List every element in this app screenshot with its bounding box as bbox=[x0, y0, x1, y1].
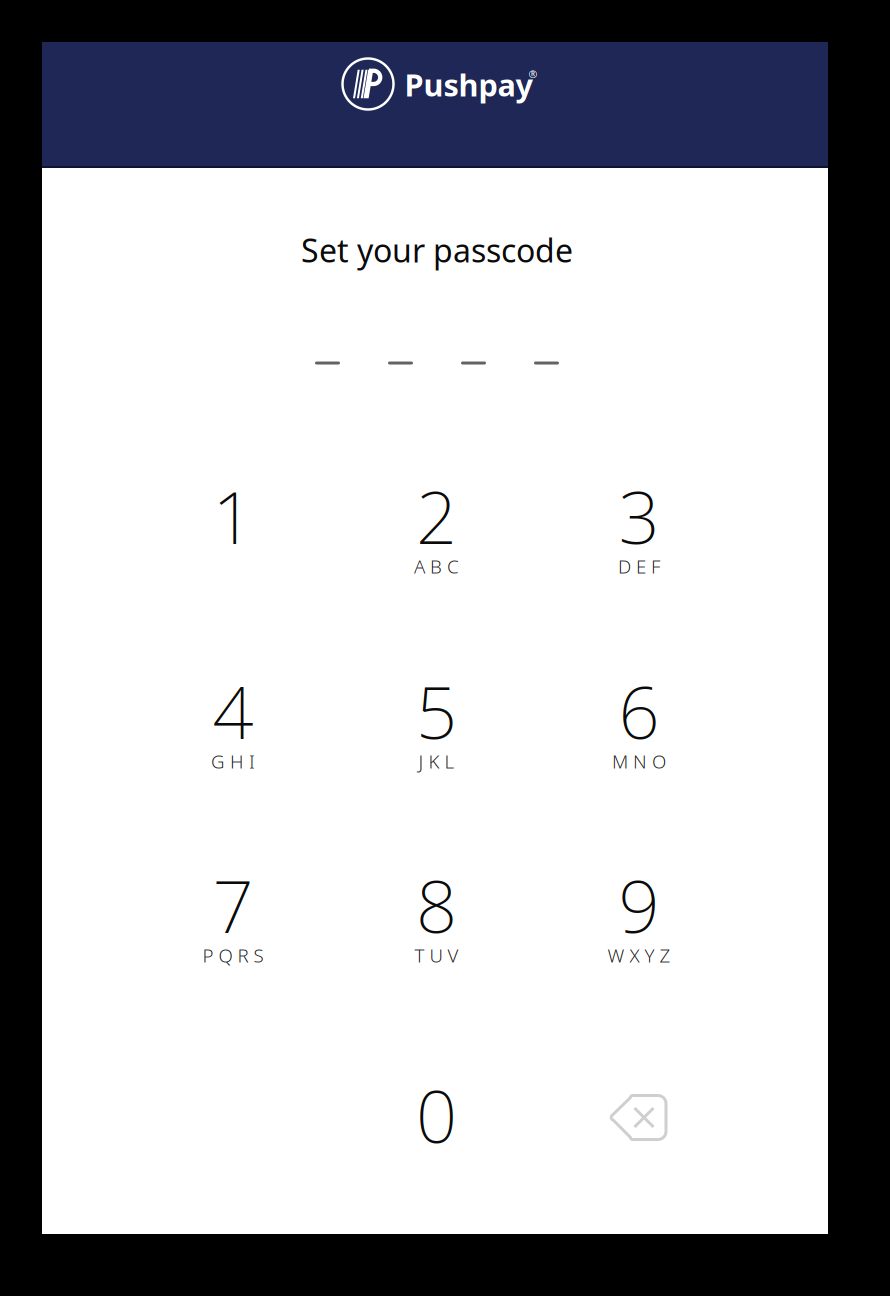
staticText: A B C bbox=[414, 554, 459, 579]
staticText: Pushpay bbox=[404, 64, 533, 105]
staticText: 7 bbox=[212, 857, 253, 953]
staticText: 8 bbox=[416, 857, 457, 953]
button[interactable]: 9 bbox=[554, 825, 724, 985]
staticText: W X Y Z bbox=[607, 943, 670, 968]
staticText: M N O bbox=[612, 749, 666, 774]
staticText: 3 bbox=[618, 468, 659, 564]
button[interactable]: 4 bbox=[148, 631, 318, 791]
staticText: 1 bbox=[212, 468, 253, 564]
button[interactable]: 5 bbox=[351, 631, 521, 791]
staticText: 0 bbox=[416, 1067, 457, 1163]
button[interactable]: 7 bbox=[148, 825, 318, 985]
staticText: G H I bbox=[211, 749, 255, 774]
staticText: D E F bbox=[618, 554, 660, 579]
button[interactable]: Delete bbox=[554, 1035, 724, 1195]
staticText: 2 bbox=[416, 468, 457, 564]
staticText: 5 bbox=[416, 663, 457, 759]
staticText: ® bbox=[528, 67, 537, 81]
button[interactable]: 1 bbox=[148, 436, 318, 596]
button[interactable]: 0 bbox=[351, 1035, 521, 1195]
staticText: 6 bbox=[618, 663, 659, 759]
staticText: P Q R S bbox=[202, 943, 263, 968]
button[interactable]: 6 bbox=[554, 631, 724, 791]
staticText: J K L bbox=[418, 749, 454, 774]
button[interactable]: 3 bbox=[554, 436, 724, 596]
staticText: 4 bbox=[212, 663, 253, 759]
staticText: Set your passcode bbox=[301, 229, 573, 271]
button[interactable]: 8 bbox=[351, 825, 521, 985]
staticText: T U V bbox=[414, 943, 458, 968]
staticText: 9 bbox=[618, 857, 659, 953]
button[interactable]: 2 bbox=[351, 436, 521, 596]
